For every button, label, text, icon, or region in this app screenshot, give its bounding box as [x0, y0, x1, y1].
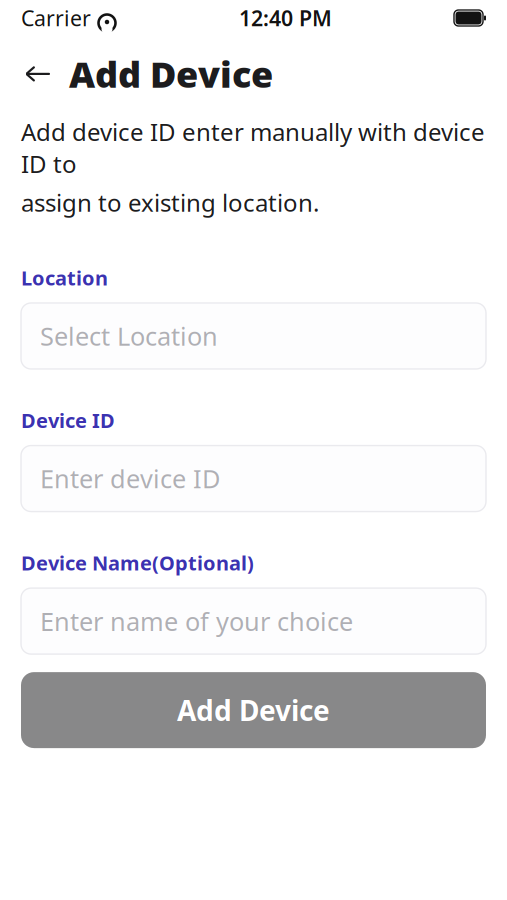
staticText: Add Device	[177, 691, 330, 729]
staticText: Add device ID enter manually with device…	[21, 116, 485, 179]
staticText: Carrier	[21, 4, 91, 32]
staticText: Select Location	[40, 319, 218, 353]
staticText: assign to existing location.	[21, 187, 319, 218]
staticText: Location	[21, 264, 108, 291]
staticText: Enter device ID	[40, 462, 220, 495]
staticText: Device ID	[21, 407, 115, 434]
button[interactable]: Back	[21, 57, 55, 91]
staticText: Enter name of your choice	[40, 604, 353, 638]
button[interactable]: Add Device	[21, 672, 486, 748]
staticText: Add Device	[69, 50, 273, 98]
staticText: Device Name(Optional)	[21, 549, 254, 576]
staticText: 12:40 PM	[239, 4, 332, 32]
button[interactable]: Enter device ID	[21, 445, 486, 511]
button[interactable]: Select Location	[21, 303, 486, 369]
button[interactable]: Enter name of your choice	[21, 588, 486, 654]
